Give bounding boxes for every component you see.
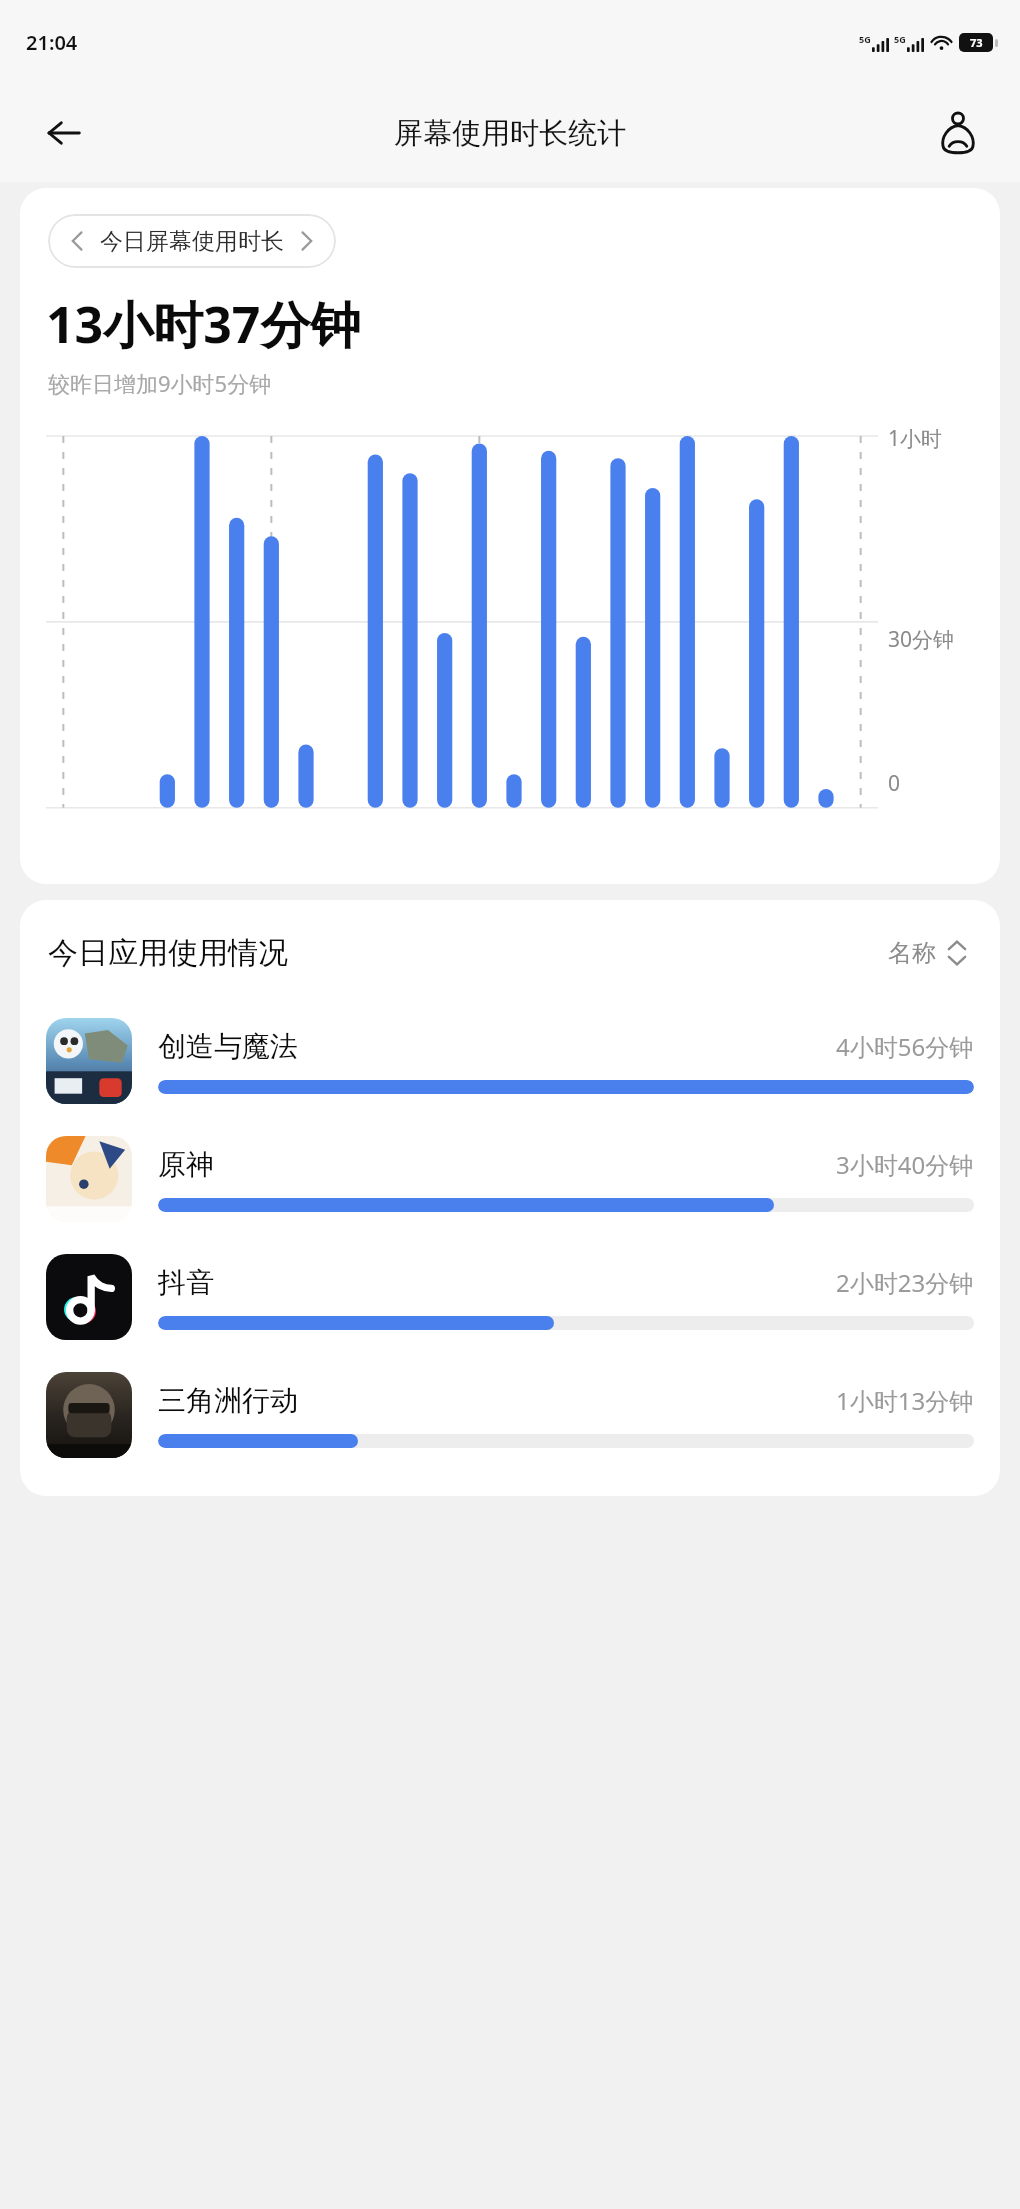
staticText: 13小时37分钟 <box>46 290 361 358</box>
staticText: 三角洲行动 <box>158 1383 298 1418</box>
staticText: 5G <box>894 33 906 45</box>
staticText: 0 <box>888 769 901 798</box>
staticText: 创造与魔法 <box>158 1029 298 1064</box>
staticText: 5G <box>859 33 871 45</box>
staticText: 4小时56分钟 <box>836 1030 974 1063</box>
button[interactable]: 三角洲行动 <box>20 1356 1000 1474</box>
staticText: 今日屏幕使用时长 <box>100 227 284 256</box>
staticText: 2小时23分钟 <box>836 1266 974 1299</box>
staticText: 1小时 <box>888 424 943 453</box>
staticText: 21:04 <box>26 29 78 56</box>
staticText: 30分钟 <box>888 625 955 654</box>
staticText: 较昨日增加9小时5分钟 <box>48 368 272 398</box>
button[interactable]: Focus mode <box>928 103 988 163</box>
staticText: 3小时40分钟 <box>836 1148 974 1181</box>
staticText: 名称 <box>888 938 936 968</box>
staticText: 原神 <box>158 1147 214 1182</box>
button[interactable]: 名称 <box>884 934 972 972</box>
button[interactable]: 今日屏幕使用时长 <box>48 214 336 268</box>
staticText: 抖音 <box>158 1265 214 1300</box>
button[interactable]: 创造与魔法 <box>20 1002 1000 1120</box>
button[interactable]: 抖音 <box>20 1238 1000 1356</box>
staticText: 屏幕使用时长统计 <box>394 115 626 152</box>
staticText: 今日应用使用情况 <box>48 934 288 972</box>
staticText: 73 <box>970 35 983 50</box>
button[interactable]: 原神 <box>20 1120 1000 1238</box>
staticText: 1小时13分钟 <box>836 1384 974 1417</box>
button[interactable]: Back <box>36 105 92 161</box>
